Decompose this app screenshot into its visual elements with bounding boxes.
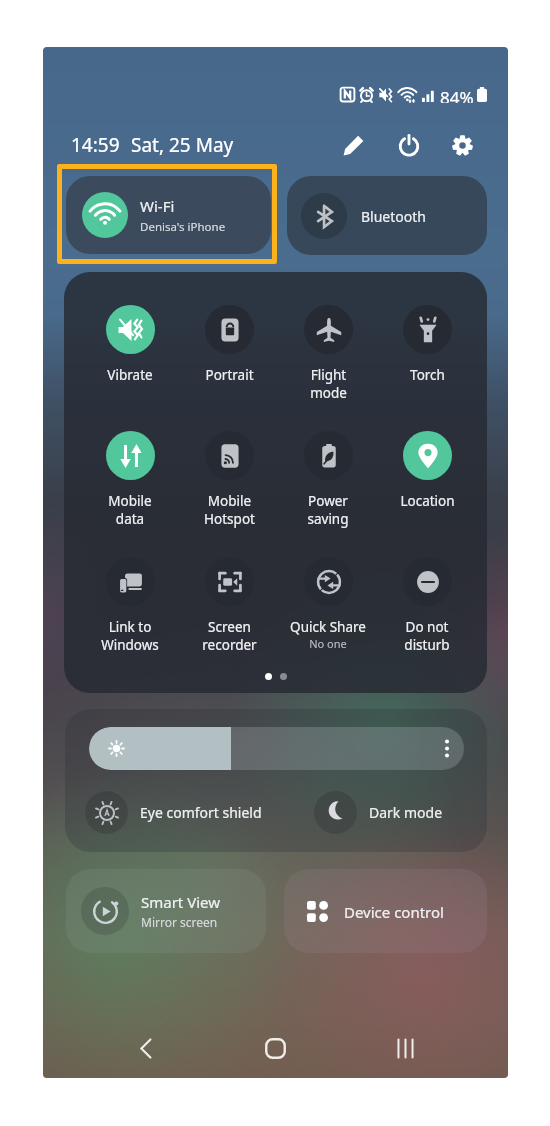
staticText: No one [309,636,347,651]
button[interactable]: Link to Windows [81,557,179,654]
staticText: Mirror screen [141,914,218,930]
staticText: Smart View [141,892,221,912]
button[interactable]: Eye comfort shield [85,790,262,834]
button[interactable]: Home [247,1020,303,1076]
button[interactable]: Vibrate [81,305,179,384]
button[interactable]: Flight mode [279,305,377,402]
staticText: Do not disturb [404,618,450,654]
button[interactable]: Quick Share [279,557,377,651]
button[interactable]: Edit [335,127,371,163]
button[interactable]: Do not disturb [378,557,476,654]
button[interactable]: Recents [377,1020,433,1076]
button[interactable]: Settings [444,127,480,163]
staticText: Quick Share [290,618,366,636]
button[interactable]: Power saving [279,431,377,528]
button[interactable]: Portrait [180,305,278,384]
staticText: Portrait [205,366,254,384]
button[interactable]: Bluetooth [287,176,487,255]
staticText: Dark mode [369,803,443,822]
button[interactable]: Wi-Fi [66,176,271,254]
staticText: Power saving [307,492,349,528]
staticText: Link to Windows [101,618,159,654]
button[interactable]: Device control [284,869,487,953]
staticText: Sat, 25 May [131,132,234,158]
button[interactable]: Mobile data [81,431,179,528]
button[interactable]: Mobile Hotspot [180,431,278,528]
staticText: Flight mode [310,366,347,402]
button[interactable]: Smart View [66,869,266,953]
staticText: Wi-Fi [140,196,175,216]
staticText: Location [400,492,455,510]
staticText: Vibrate [107,366,153,384]
staticText: Bluetooth [361,207,426,226]
staticText: Mobile Hotspot [204,492,255,528]
staticText: Eye comfort shield [140,803,262,822]
staticText: Device control [344,902,444,922]
button[interactable]: Dark mode [314,790,443,834]
button[interactable]: Torch [378,305,476,384]
staticText: Mobile data [108,492,152,528]
button[interactable]: Location [378,431,476,510]
button[interactable]: Screen recorder [180,557,278,654]
staticText: 14:59 [71,132,120,158]
staticText: Denisa's iPhone [140,219,226,235]
button[interactable] [89,727,464,770]
staticText: Screen recorder [202,618,257,654]
staticText: Torch [410,366,445,384]
button[interactable]: Back [117,1020,173,1076]
button[interactable]: Power [391,127,427,163]
staticText: 84% [440,86,474,103]
